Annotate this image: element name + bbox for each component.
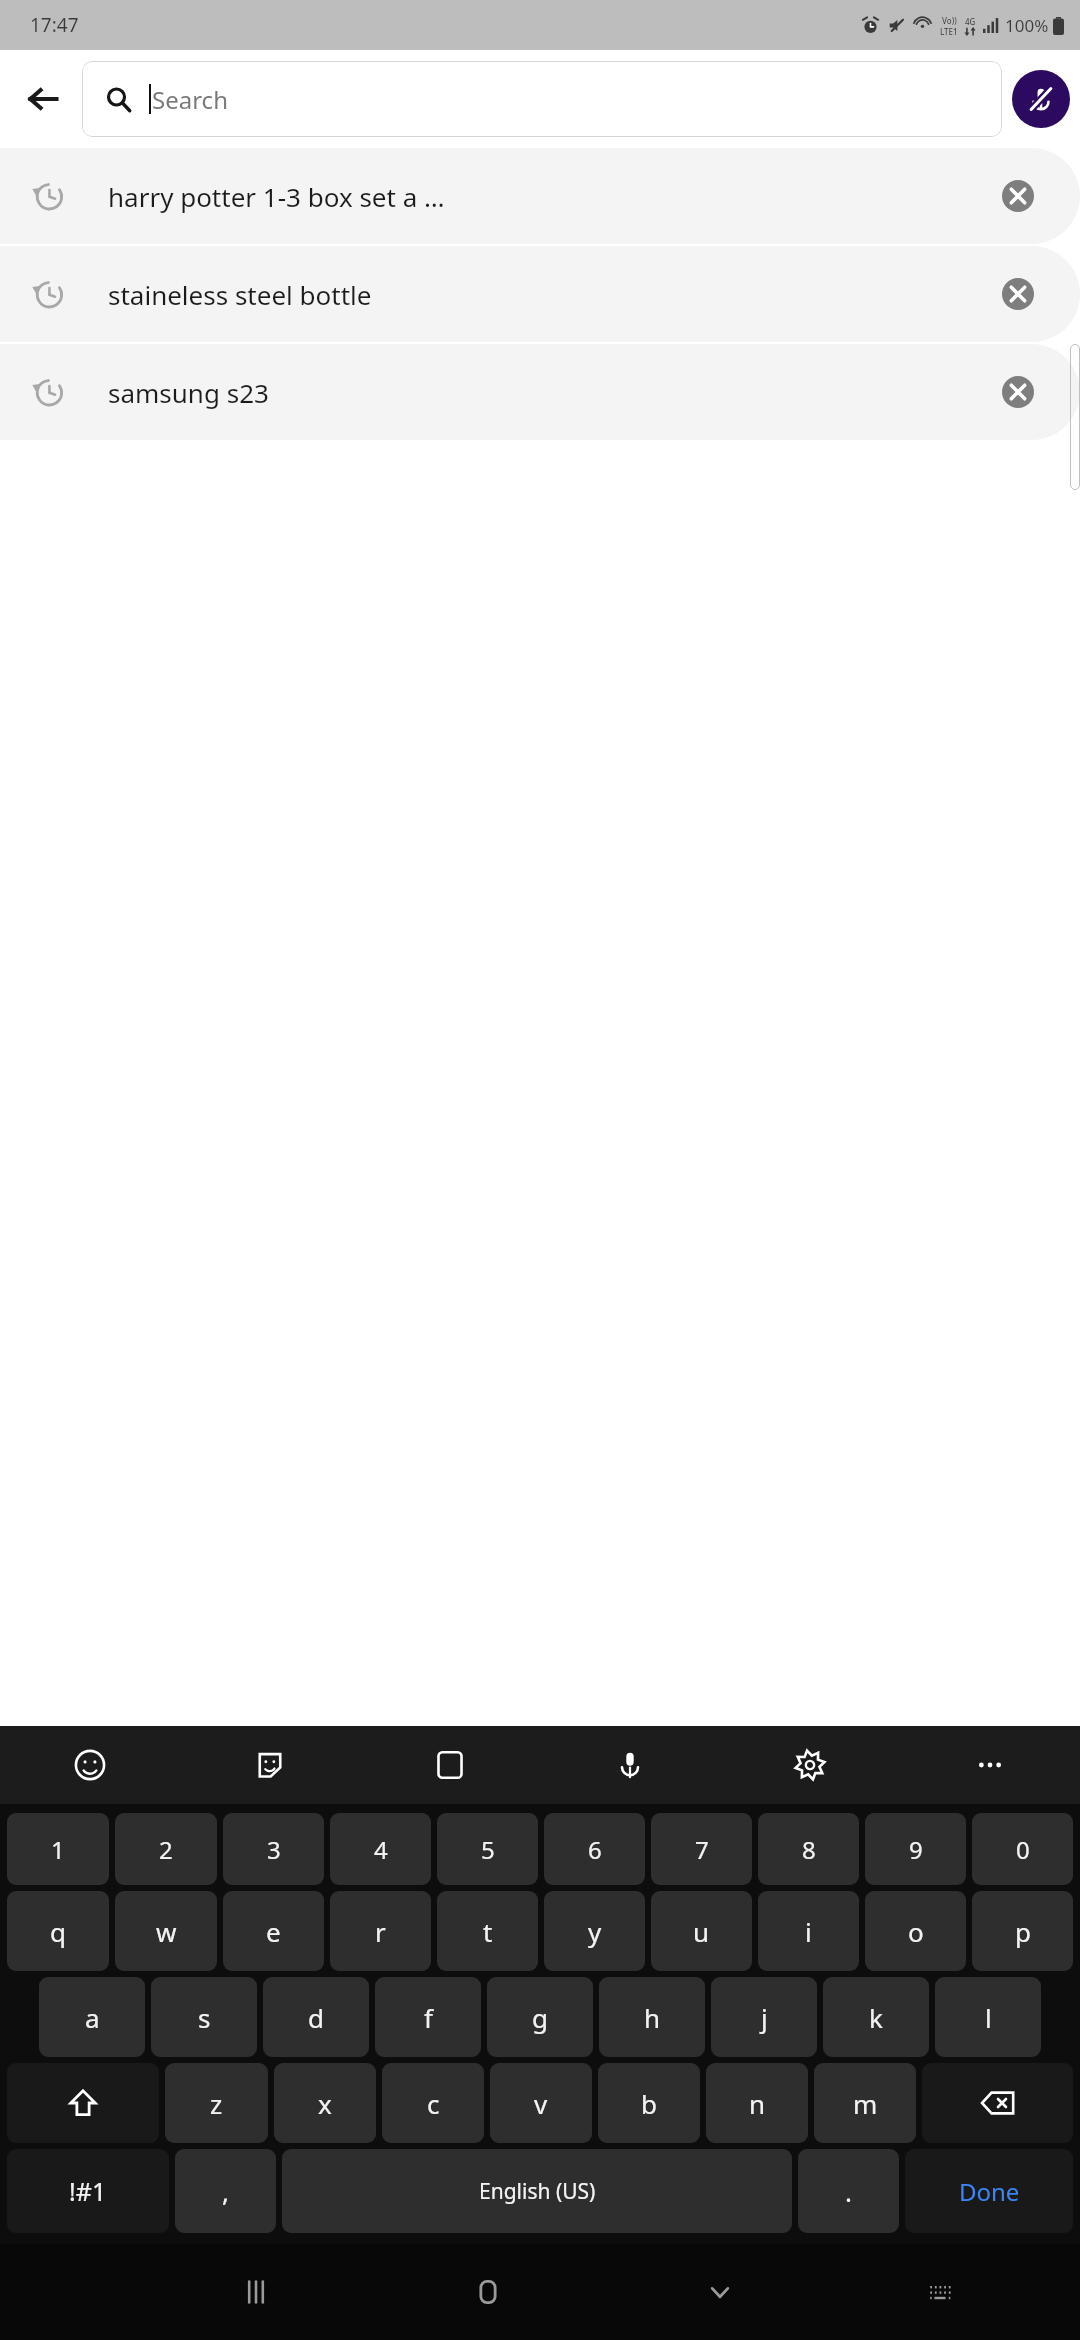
button[interactable]: g <box>487 1977 593 2057</box>
button[interactable]: t <box>437 1891 538 1971</box>
button[interactable]: p <box>972 1891 1073 1971</box>
button[interactable]: Search <box>82 61 1002 137</box>
button[interactable]: n <box>706 2063 808 2143</box>
button[interactable]: 2 <box>115 1813 217 1885</box>
staticText: t <box>483 1914 493 1949</box>
button[interactable]: staineless steel bottle <box>0 246 1080 342</box>
button[interactable]: r <box>330 1891 431 1971</box>
button[interactable]: v <box>490 2063 592 2143</box>
button[interactable]: Voice search off <box>1012 70 1070 128</box>
button[interactable]: . <box>798 2149 899 2233</box>
staticText: English (US) <box>479 2177 596 2206</box>
staticText: Search <box>152 83 228 116</box>
button[interactable]: z <box>165 2063 268 2143</box>
staticText: x <box>318 2086 332 2121</box>
staticText: g <box>532 2000 548 2035</box>
button[interactable]: b <box>598 2063 700 2143</box>
button[interactable]: 7 <box>651 1813 752 1885</box>
staticText: staineless steel bottle <box>108 277 982 312</box>
button[interactable]: 0 <box>972 1813 1073 1885</box>
staticText: b <box>641 2086 657 2121</box>
button[interactable]: 4 <box>330 1813 431 1885</box>
button[interactable]: 6 <box>544 1813 645 1885</box>
staticText: u <box>693 1914 710 1949</box>
staticText: z <box>210 2086 223 2121</box>
button[interactable]: harry potter 1-3 box set a … <box>0 148 1080 244</box>
button[interactable]: Keyboard settings <box>720 1726 900 1804</box>
staticText: s <box>198 2000 211 2035</box>
button[interactable]: m <box>814 2063 916 2143</box>
button[interactable]: o <box>865 1891 966 1971</box>
button[interactable]: Home <box>372 2244 604 2340</box>
staticText: m <box>853 2086 878 2121</box>
button[interactable]: Done <box>905 2149 1073 2233</box>
staticText: j <box>761 2000 768 2035</box>
button[interactable]: 8 <box>758 1813 859 1885</box>
staticText: samsung s23 <box>108 375 982 410</box>
staticText: e <box>266 1914 281 1949</box>
button[interactable]: x <box>274 2063 376 2143</box>
staticText: 5 <box>481 1833 495 1866</box>
button[interactable]: 3 <box>223 1813 324 1885</box>
button[interactable]: k <box>823 1977 929 2057</box>
staticText: r <box>375 1914 386 1949</box>
button[interactable]: Shift <box>7 2063 159 2143</box>
button[interactable]: i <box>758 1891 859 1971</box>
button[interactable]: Backspace <box>922 2063 1073 2143</box>
button[interactable]: More options <box>900 1726 1080 1804</box>
staticText: 8 <box>802 1833 816 1866</box>
button[interactable]: w <box>115 1891 217 1971</box>
button[interactable]: 1 <box>7 1813 109 1885</box>
button[interactable]: q <box>7 1891 109 1971</box>
button[interactable]: c <box>382 2063 484 2143</box>
button[interactable]: , <box>175 2149 276 2233</box>
staticText: 3 <box>267 1833 281 1866</box>
staticText: i <box>805 1914 812 1949</box>
button[interactable]: GIF <box>360 1726 540 1804</box>
button[interactable]: y <box>544 1891 645 1971</box>
staticText: p <box>1015 1914 1031 1949</box>
button[interactable]: h <box>599 1977 705 2057</box>
staticText: o <box>908 1914 924 1949</box>
staticText: n <box>749 2086 766 2121</box>
button[interactable]: Hide keyboard <box>604 2244 836 2340</box>
button[interactable]: a <box>39 1977 145 2057</box>
button[interactable]: samsung s23 <box>0 344 1080 440</box>
button[interactable]: Emoji <box>0 1726 180 1804</box>
staticText: y <box>588 1914 602 1949</box>
button[interactable]: !#1 <box>7 2149 169 2233</box>
button[interactable]: Back <box>10 66 76 132</box>
staticText: 4 <box>374 1833 388 1866</box>
button[interactable]: l <box>935 1977 1041 2057</box>
button[interactable]: f <box>375 1977 481 2057</box>
staticText: 100% <box>1005 14 1049 37</box>
button[interactable]: Remove suggestion <box>982 356 1054 428</box>
button[interactable]: Remove suggestion <box>982 160 1054 232</box>
button[interactable]: Change keyboard <box>836 2244 1045 2340</box>
button[interactable]: Recents <box>140 2244 372 2340</box>
button[interactable]: u <box>651 1891 752 1971</box>
staticText: c <box>427 2086 440 2121</box>
button[interactable]: d <box>263 1977 369 2057</box>
button[interactable]: 5 <box>437 1813 538 1885</box>
button[interactable]: s <box>151 1977 257 2057</box>
staticText: d <box>308 2000 324 2035</box>
button[interactable]: Voice input <box>540 1726 720 1804</box>
button[interactable]: j <box>711 1977 817 2057</box>
staticText: 7 <box>695 1833 709 1866</box>
staticText: 9 <box>909 1833 923 1866</box>
staticText: 0 <box>1016 1833 1030 1866</box>
staticText: 4G <box>965 16 976 27</box>
staticText: k <box>869 2000 883 2035</box>
button[interactable]: 9 <box>865 1813 966 1885</box>
button[interactable]: e <box>223 1891 324 1971</box>
button[interactable]: English (US) <box>282 2149 792 2233</box>
staticText: 1 <box>51 1833 65 1866</box>
staticText: Done <box>959 2175 1020 2208</box>
button[interactable]: Stickers <box>180 1726 360 1804</box>
button[interactable]: Remove suggestion <box>982 258 1054 330</box>
staticText: q <box>50 1914 66 1949</box>
staticText: harry potter 1-3 box set a … <box>108 179 982 214</box>
staticText: l <box>985 2000 992 2035</box>
staticText: , <box>222 2174 229 2209</box>
